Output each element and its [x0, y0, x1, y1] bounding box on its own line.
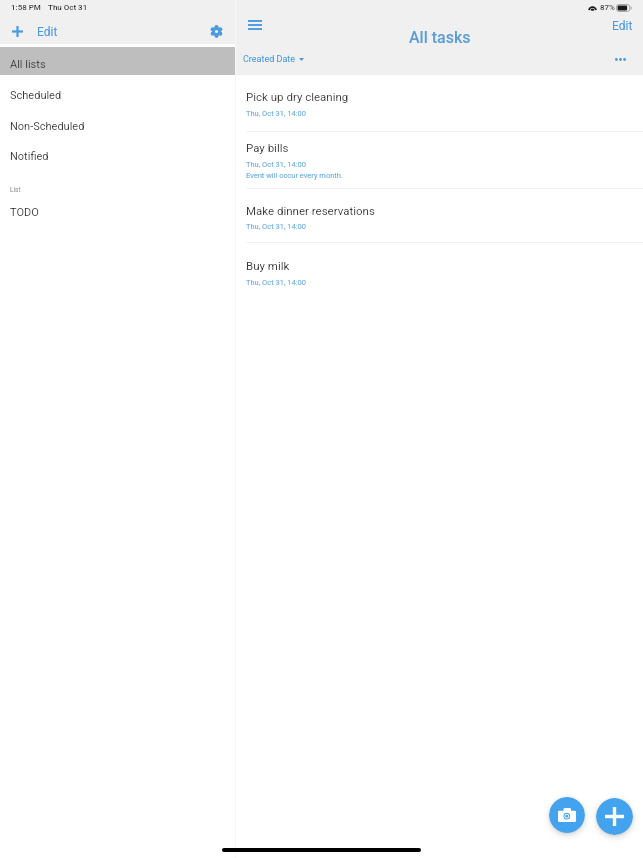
staticText: Thu, Oct 31, 14:00	[246, 160, 306, 169]
staticText: 1:58 PM	[11, 3, 41, 12]
button[interactable]: Make dinner reservations	[236, 189, 643, 243]
button[interactable]: Edit	[32, 21, 63, 43]
button[interactable]: Buy milk	[236, 242, 643, 296]
staticText: 87%	[600, 3, 615, 12]
button[interactable]: Add task	[596, 798, 633, 835]
staticText: Edit	[37, 25, 58, 39]
staticText: Scheduled	[10, 89, 62, 102]
button[interactable]: Pick up dry cleaning	[236, 75, 643, 132]
staticText: Created Date	[243, 54, 296, 65]
staticText: Non-Scheduled	[10, 120, 85, 133]
staticText: All tasks	[409, 28, 471, 47]
button[interactable]: Take photo	[549, 797, 585, 833]
button[interactable]: Scheduled	[0, 79, 235, 110]
staticText: Edit	[612, 19, 633, 33]
staticText: Pick up dry cleaning	[246, 90, 349, 103]
staticText: List	[10, 186, 21, 194]
staticText: Pay bills	[246, 141, 289, 154]
button[interactable]: Edit	[607, 15, 638, 37]
staticText: Event will occur every month.	[246, 171, 343, 180]
staticText: Thu, Oct 31, 14:00	[246, 109, 306, 118]
button[interactable]: Menu	[240, 11, 270, 39]
button[interactable]: Non-Scheduled	[0, 110, 235, 141]
button[interactable]: Notified	[0, 140, 235, 171]
button[interactable]: Pay bills	[236, 132, 643, 189]
button[interactable]: Add list	[2, 17, 32, 45]
staticText: Thu, Oct 31, 14:00	[246, 278, 306, 287]
staticText: Thu Oct 31	[48, 3, 88, 12]
button[interactable]: Created Date	[238, 50, 309, 69]
button[interactable]: More options	[608, 47, 632, 71]
staticText: Buy milk	[246, 259, 290, 272]
button[interactable]: Settings	[201, 17, 231, 46]
button[interactable]: TODO	[0, 196, 235, 227]
button[interactable]: All lists	[0, 48, 235, 79]
staticText: All lists	[10, 58, 46, 71]
staticText: TODO	[10, 206, 39, 219]
staticText: Make dinner reservations	[246, 204, 375, 217]
staticText: Notified	[10, 150, 49, 163]
staticText: Thu, Oct 31, 14:00	[246, 222, 306, 231]
